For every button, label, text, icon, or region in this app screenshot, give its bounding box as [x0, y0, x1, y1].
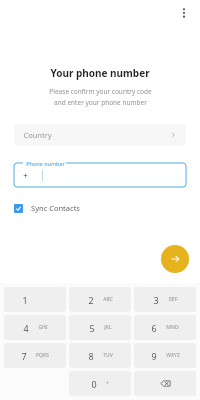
button[interactable]: 3	[134, 287, 196, 312]
button[interactable]: 1	[4, 287, 66, 312]
button[interactable]: 9	[134, 343, 196, 368]
staticText: 4	[23, 322, 29, 334]
staticText: +	[23, 170, 28, 181]
button[interactable]: Next	[161, 245, 189, 273]
staticText: 1	[22, 294, 28, 306]
button[interactable]: Phone number	[14, 163, 186, 187]
staticText: MNO	[166, 324, 179, 331]
staticText: +	[106, 380, 109, 387]
button[interactable]: 4	[4, 315, 66, 340]
staticText: 8	[88, 350, 94, 362]
staticText: Phone number	[26, 160, 65, 167]
staticText: PQRS	[36, 352, 49, 359]
staticText: Country	[23, 130, 52, 140]
staticText: GHI	[38, 324, 48, 331]
staticText: Please confirm your country code	[49, 87, 152, 96]
staticText: Your phone number	[50, 66, 150, 80]
staticText: ABC	[103, 296, 113, 303]
button[interactable]: 6	[134, 315, 196, 340]
button[interactable]: Sync Contacts	[14, 200, 80, 216]
button[interactable]: 8	[69, 343, 131, 368]
button[interactable]: 7	[4, 343, 66, 368]
staticText: 6	[151, 322, 157, 334]
button[interactable]: Backspace	[134, 371, 196, 396]
staticText: Sync Contacts	[31, 203, 80, 213]
staticText: JKL	[104, 324, 112, 331]
staticText: WXYZ	[166, 352, 180, 359]
button[interactable]: More options	[174, 3, 194, 23]
button[interactable]: Country	[14, 124, 186, 146]
staticText: 3	[153, 294, 159, 306]
button[interactable]: 5	[69, 315, 131, 340]
staticText: 5	[89, 322, 95, 334]
button[interactable]: 2	[69, 287, 131, 312]
staticText: TUV	[103, 352, 113, 359]
button[interactable]: 0	[69, 371, 131, 396]
staticText: 9	[151, 350, 157, 362]
staticText: DEF	[168, 296, 178, 303]
staticText: 0	[91, 378, 97, 390]
staticText: 7	[21, 350, 27, 362]
staticText: and enter your phone number	[54, 98, 147, 107]
staticText: 2	[88, 294, 94, 306]
